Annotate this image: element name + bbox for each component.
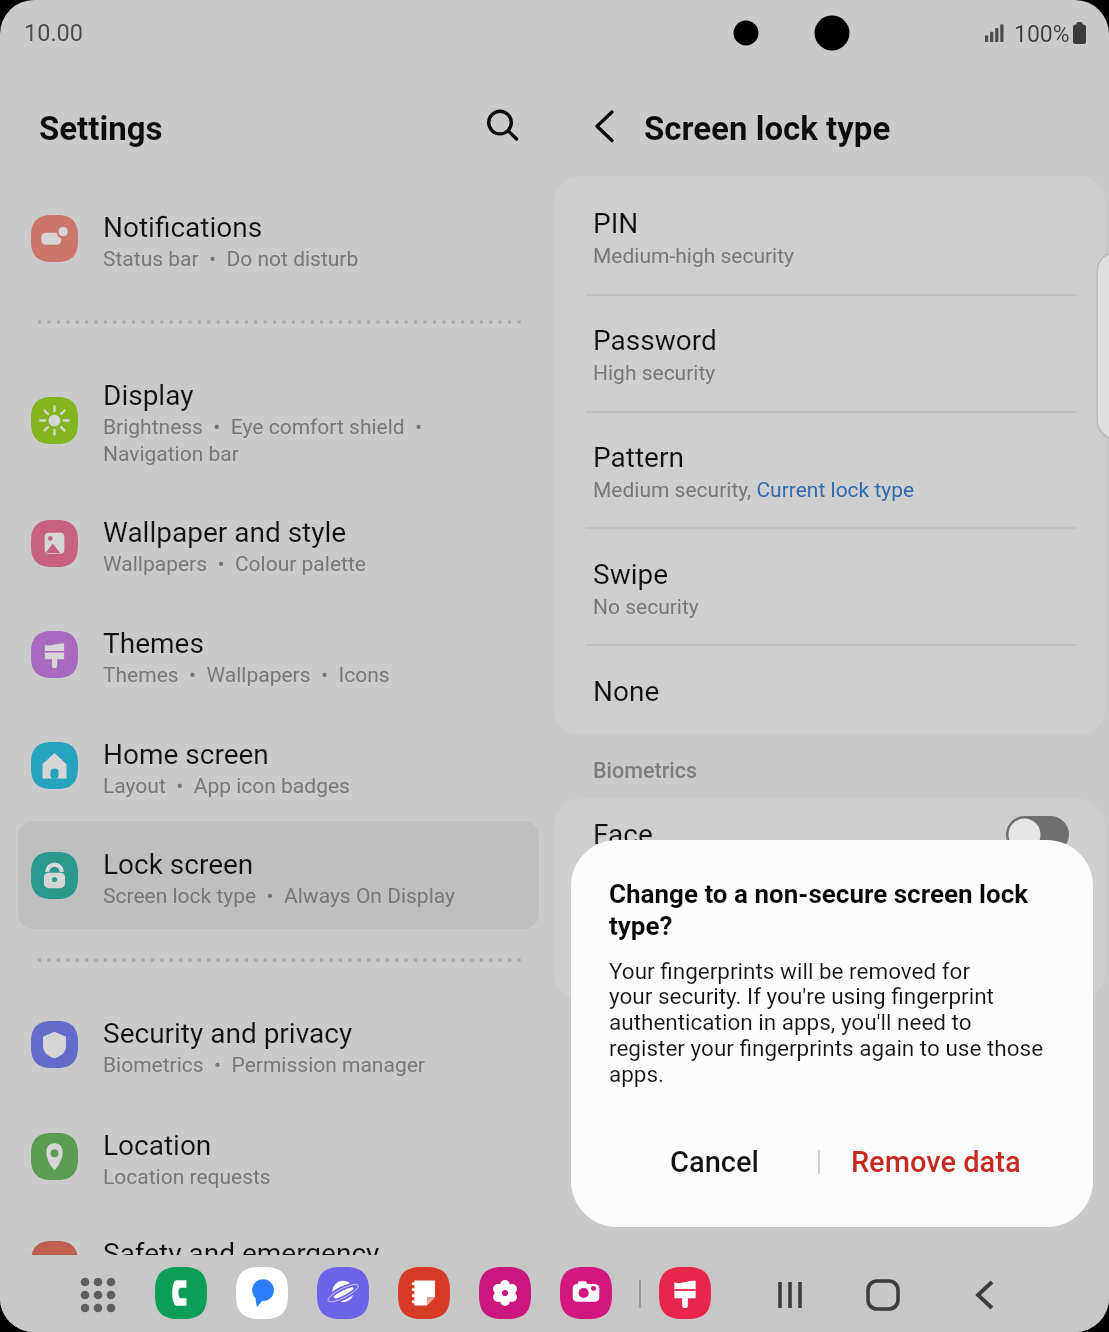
staticText: Notifications	[103, 211, 263, 244]
button[interactable]: Themes	[659, 1267, 711, 1319]
staticText: Settings	[39, 109, 163, 148]
button[interactable]: Notifications	[0, 184, 560, 292]
staticText: Medium security, Current lock type	[593, 478, 915, 503]
staticText: Password	[593, 324, 717, 357]
staticText: Your fingerprints will be removed for yo…	[609, 958, 1044, 1088]
button[interactable]: Home	[855, 1267, 911, 1323]
staticText: No security	[593, 595, 699, 620]
staticText: Swipe	[593, 558, 669, 591]
button[interactable]: Internet	[317, 1267, 369, 1319]
staticText: Display	[103, 379, 194, 412]
staticText: Location	[103, 1129, 212, 1162]
staticText: Screen lock type • Always On Display	[103, 884, 455, 909]
staticText: High security	[593, 361, 716, 386]
staticText: Wallpapers • Colour palette	[103, 552, 366, 577]
button[interactable]: None	[586, 665, 1106, 735]
button[interactable]: PIN	[586, 197, 1106, 294]
button[interactable]: Lock screen	[0, 821, 560, 929]
button[interactable]: Messages	[236, 1267, 288, 1319]
staticText: Themes • Wallpapers • Icons	[103, 663, 390, 688]
button[interactable]: Camera	[560, 1267, 612, 1319]
button[interactable]: Pattern	[586, 431, 1106, 528]
staticText: Biometrics • Permission manager	[103, 1053, 425, 1078]
button[interactable]: Themes	[0, 600, 560, 708]
staticText: Location requests	[103, 1165, 271, 1190]
staticText: Status bar • Do not disturb	[103, 247, 359, 272]
staticText: Biometrics	[593, 758, 698, 783]
button[interactable]: Location	[0, 1102, 560, 1210]
staticText: None	[593, 675, 660, 708]
staticText: Medical info • Emergency SOS	[103, 1273, 395, 1298]
staticText: Brightness • Eye comfort shield • Naviga…	[103, 415, 423, 467]
button[interactable]: Wallpaper and style	[0, 489, 560, 597]
button[interactable]: Search	[469, 92, 531, 154]
button[interactable]: Gallery	[479, 1267, 531, 1319]
staticText: Safety and emergency	[103, 1237, 380, 1270]
staticText: Home screen	[103, 738, 269, 771]
button[interactable]: Display	[0, 366, 560, 474]
staticText: Themes	[103, 627, 204, 660]
staticText: Security and privacy	[103, 1017, 353, 1050]
staticText: Change to a non-secure screen lock type?	[609, 879, 1029, 941]
staticText: Layout • App icon badges	[103, 774, 350, 799]
staticText: Remove data	[851, 1145, 1021, 1179]
button[interactable]: Apps	[72, 1269, 124, 1321]
button[interactable]: Recents	[762, 1267, 818, 1323]
button[interactable]: Notes	[398, 1267, 450, 1319]
button[interactable]: Home screen	[0, 711, 560, 819]
staticText: 100%	[1014, 21, 1074, 48]
staticText: Cancel	[670, 1145, 759, 1179]
staticText: 10.00	[24, 19, 84, 47]
staticText: Medium-high security	[593, 244, 795, 269]
button[interactable]: Security and privacy	[0, 990, 560, 1098]
staticText: Face	[593, 818, 653, 851]
button[interactable]: Safety and emergency	[0, 1210, 560, 1318]
staticText: PIN	[593, 207, 639, 240]
staticText: Wallpaper and style	[103, 516, 347, 549]
button[interactable]: Phone	[155, 1267, 207, 1319]
button[interactable]: Back	[957, 1267, 1013, 1323]
staticText: Lock screen	[103, 848, 254, 881]
button[interactable]: Remove data	[825, 1125, 1047, 1199]
button[interactable]: Cancel	[608, 1125, 821, 1199]
button[interactable]: Navigate up	[565, 95, 627, 157]
button[interactable]: Swipe	[586, 548, 1106, 645]
button[interactable]: Password	[586, 314, 1106, 411]
staticText: Screen lock type	[644, 109, 891, 148]
staticText: Pattern	[593, 441, 684, 474]
